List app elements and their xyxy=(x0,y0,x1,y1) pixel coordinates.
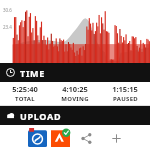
staticText: TIME xyxy=(20,67,46,79)
button[interactable]: Add xyxy=(108,130,124,146)
staticText: 1:15:15 xyxy=(112,84,138,94)
staticText: 5:25:40 xyxy=(12,84,38,94)
staticText: 23.4 xyxy=(3,24,12,30)
staticText: MOVING xyxy=(61,95,89,103)
staticText: 4:10:25 xyxy=(62,84,88,94)
button[interactable]: UPLOAD xyxy=(0,106,150,125)
button[interactable]: 4:10:25 xyxy=(50,84,100,103)
button[interactable]: TIME xyxy=(0,63,150,82)
staticText: TOTAL xyxy=(15,95,35,103)
button[interactable]: 5:25:40 xyxy=(0,84,50,103)
button[interactable]: Upload to Garmin Connect xyxy=(28,128,47,147)
button[interactable]: Share xyxy=(78,130,94,146)
staticText: PAUSED xyxy=(113,95,138,103)
staticText: UPLOAD xyxy=(20,110,62,122)
button[interactable]: Upload to Strava xyxy=(51,128,70,147)
staticText: 30.6 xyxy=(3,7,12,13)
button[interactable]: 1:15:15 xyxy=(100,84,150,103)
